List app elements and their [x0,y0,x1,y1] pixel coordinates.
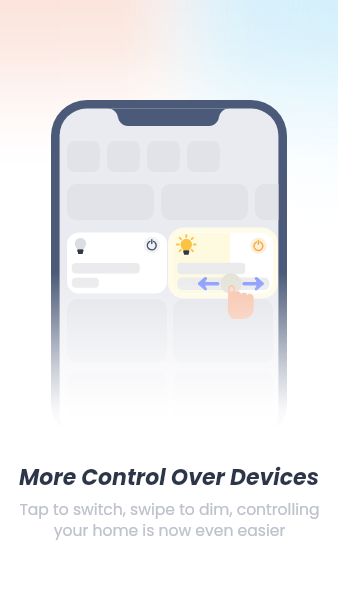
staticText: Tap to switch, swipe to dim, controlling… [19,499,320,541]
staticText: More Control Over Devices [19,462,319,493]
